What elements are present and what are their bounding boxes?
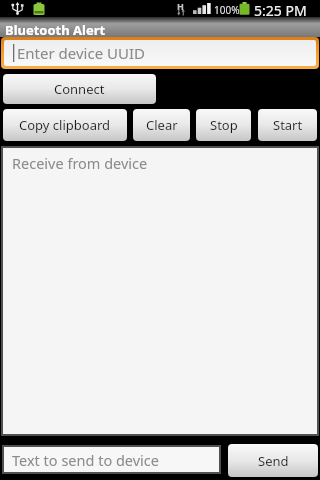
- staticText: Stop: [210, 116, 238, 134]
- staticText: Connect: [54, 80, 105, 98]
- staticText: Clear: [146, 116, 178, 134]
- staticText: Receive from device: [12, 153, 148, 173]
- staticText: 100%: [214, 3, 240, 17]
- button[interactable]: Receive from device: [1, 146, 319, 436]
- button[interactable]: Send: [228, 444, 318, 477]
- button[interactable]: Enter device UUID: [1, 37, 319, 69]
- button[interactable]: Clear: [133, 109, 190, 141]
- button[interactable]: Text to send to device: [2, 445, 221, 474]
- staticText: H: [177, 0, 184, 12]
- button[interactable]: Connect: [3, 74, 156, 104]
- staticText: Bluetooth Alert: [5, 21, 106, 39]
- button[interactable]: Stop: [196, 109, 251, 141]
- staticText: Start: [273, 116, 303, 134]
- staticText: Send: [258, 452, 289, 470]
- button[interactable]: Copy clipboard: [3, 109, 127, 141]
- staticText: Text to send to device: [12, 450, 159, 470]
- staticText: Enter device UUID: [17, 43, 145, 63]
- button[interactable]: Start: [258, 109, 317, 141]
- staticText: Copy clipboard: [19, 116, 111, 134]
- staticText: 5:25 PM: [254, 1, 307, 20]
